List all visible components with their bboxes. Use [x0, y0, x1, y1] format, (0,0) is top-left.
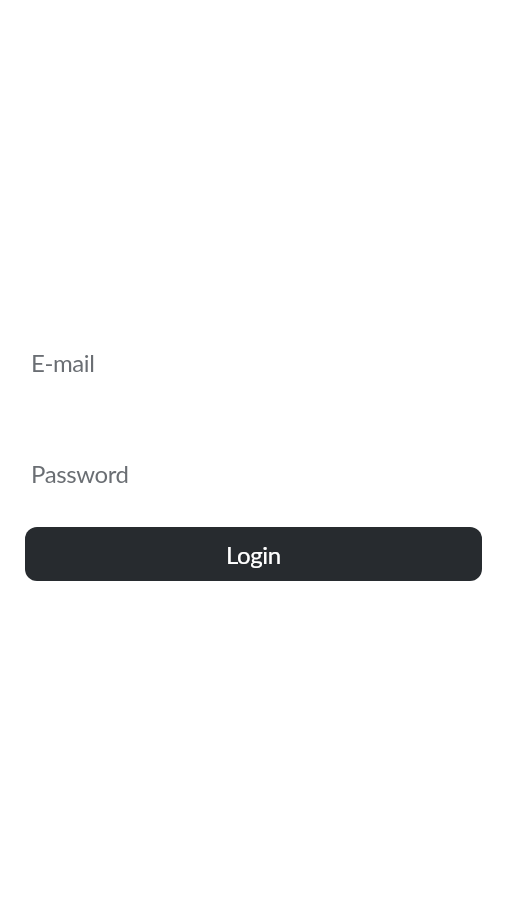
staticText: E-mail [31, 348, 95, 377]
staticText: Login [226, 540, 281, 569]
staticText: Password [31, 459, 129, 488]
button[interactable]: Login [25, 527, 482, 581]
